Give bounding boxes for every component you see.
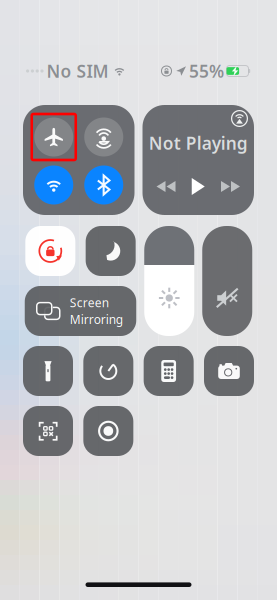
staticText: 55% xyxy=(189,59,224,82)
button[interactable]: Bluetooth xyxy=(84,165,123,204)
button[interactable]: Volume xyxy=(202,226,252,336)
button[interactable]: Screen Recording xyxy=(83,406,133,456)
button[interactable]: Calculator xyxy=(144,346,194,396)
button[interactable]: Timer xyxy=(83,346,133,396)
button[interactable]: Code Scanner xyxy=(23,406,73,456)
button[interactable]: Cellular Data xyxy=(84,117,123,156)
staticText: Screen xyxy=(70,295,109,310)
button[interactable]: Wi-Fi xyxy=(34,165,73,204)
button[interactable]: Flashlight xyxy=(23,346,73,396)
button[interactable]: Do Not Disturb xyxy=(86,226,136,276)
staticText: Not Playing xyxy=(149,131,248,154)
staticText: No SIM xyxy=(47,59,109,82)
button[interactable]: Now Playing xyxy=(142,105,254,215)
button[interactable]: Camera xyxy=(204,346,254,396)
button[interactable]: Airplane Mode xyxy=(34,117,73,156)
button[interactable]: Brightness xyxy=(144,226,194,336)
button[interactable]: Rotation Lock xyxy=(25,226,75,276)
staticText: Mirroring xyxy=(70,311,123,327)
button[interactable]: Screen Mirroring xyxy=(25,286,136,336)
